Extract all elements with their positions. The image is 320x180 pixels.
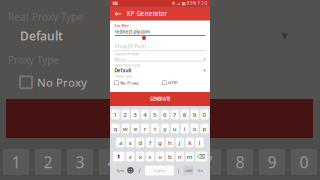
staticText: 6 [171, 151, 180, 173]
staticText: Site Web [114, 23, 128, 28]
button[interactable]: | [175, 166, 182, 175]
staticText: 5 [153, 110, 157, 119]
staticText: v [158, 152, 161, 161]
button[interactable]: s [126, 138, 134, 147]
button[interactable]: 8 [181, 110, 189, 119]
staticText: Real Proxy Type [114, 63, 140, 67]
staticText: XP Generator [126, 9, 167, 18]
staticText: 4 [107, 151, 116, 173]
button[interactable]: g [156, 138, 164, 147]
button[interactable]: o [190, 124, 199, 133]
button[interactable]: English [145, 166, 174, 175]
button[interactable]: p [200, 124, 209, 133]
button[interactable]: y [161, 124, 169, 133]
staticText: x [139, 152, 142, 161]
staticText: ▼ [281, 30, 288, 41]
staticText: i [184, 124, 186, 133]
button[interactable]: 5 [151, 110, 159, 119]
button[interactable]: j [176, 138, 184, 147]
staticText: e [134, 124, 137, 133]
staticText: ⬆ [116, 153, 121, 160]
staticText: Sym [116, 168, 123, 173]
staticText: Real Proxy Type [8, 10, 83, 24]
button[interactable]: 7 [171, 110, 179, 119]
staticText: GENERATE [150, 96, 170, 102]
button[interactable]: Proxy (IP:Port) [114, 43, 145, 50]
staticText: ⌫ [197, 153, 205, 160]
button[interactable]: No Proxy [114, 80, 138, 86]
button[interactable]: ⬆ [113, 152, 125, 161]
staticText: q [113, 124, 117, 133]
button[interactable]: b [166, 152, 174, 161]
button[interactable]: m [186, 152, 194, 161]
button[interactable]: 9 [190, 110, 199, 119]
button[interactable]: w [121, 124, 129, 133]
button[interactable]: n [176, 152, 184, 161]
staticText: / [139, 166, 141, 174]
button[interactable]: None [114, 56, 205, 62]
button[interactable]: Default [114, 67, 205, 74]
button[interactable]: r [141, 124, 149, 133]
staticText: 7 [203, 151, 212, 173]
button[interactable]: h [166, 138, 174, 147]
button[interactable]: Back [113, 6, 122, 20]
button[interactable]: redirect.ply.com [114, 28, 149, 35]
staticText: 6 [163, 110, 167, 119]
staticText: 1 [11, 151, 20, 173]
staticText: None [114, 56, 125, 62]
button[interactable]: t [151, 124, 159, 133]
button[interactable]: l [195, 138, 204, 147]
button[interactable]: i [181, 124, 189, 133]
staticText: m [187, 152, 193, 161]
staticText: h [168, 138, 172, 147]
staticText: a [119, 138, 122, 147]
button[interactable]: GENERATE [110, 92, 210, 106]
button[interactable]: z [126, 152, 134, 161]
staticText: 1 [113, 110, 117, 119]
button[interactable]: k [186, 138, 194, 147]
button[interactable]: c [146, 152, 154, 161]
staticText: z [129, 152, 132, 161]
button[interactable]: d [136, 138, 144, 147]
staticText: No Proxy [120, 80, 138, 86]
staticText: ▸ [114, 0, 116, 6]
button[interactable]: .com [183, 166, 193, 175]
staticText: 3 [75, 151, 84, 173]
button[interactable]: 2 [121, 110, 129, 119]
staticText: HTTP [168, 80, 178, 86]
staticText: k [188, 138, 191, 147]
staticText: ← [114, 8, 121, 19]
button[interactable]: e [131, 124, 139, 133]
staticText: 0 [203, 110, 207, 119]
button[interactable]: 4 [141, 110, 149, 119]
button[interactable]: / [136, 166, 143, 175]
button[interactable]: HTTP [162, 80, 178, 86]
staticText: 7 [173, 110, 177, 119]
staticText: r [144, 124, 147, 133]
staticText: | [177, 167, 180, 174]
staticText: p [203, 124, 207, 133]
button[interactable]: u [171, 124, 179, 133]
staticText: f [149, 138, 151, 147]
staticText: y [163, 124, 166, 133]
staticText: Go [198, 168, 203, 173]
staticText: No Proxy [37, 75, 87, 90]
button[interactable]: 0 [200, 110, 209, 119]
button[interactable]: Sym [115, 166, 125, 175]
staticText: Proxy Type [114, 74, 132, 78]
staticText: 4 [143, 110, 147, 119]
button[interactable]: ⌫ [195, 152, 207, 161]
button[interactable]: 1 [111, 110, 120, 119]
button[interactable]: v [156, 152, 164, 161]
button[interactable]: 6 [161, 110, 169, 119]
button[interactable]: x [136, 152, 144, 161]
button[interactable]: a [116, 138, 124, 147]
button[interactable]: q [111, 124, 120, 133]
staticText: o [193, 124, 197, 133]
staticText: g [158, 138, 162, 147]
button[interactable]: Emoji [127, 166, 134, 175]
button[interactable]: Go [195, 166, 205, 175]
staticText: w [123, 124, 128, 133]
button[interactable]: 3 [131, 110, 139, 119]
button[interactable]: f [146, 138, 154, 147]
